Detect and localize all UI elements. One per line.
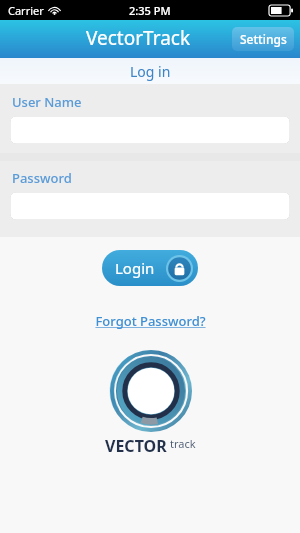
staticText: Log in [130,62,171,81]
staticText: Login [115,258,155,278]
staticText: track [170,436,196,451]
button[interactable]: Settings [232,27,294,51]
staticText: Settings [240,31,287,47]
staticText: VectorTrack [86,25,191,51]
staticText: Password [12,169,72,187]
button[interactable] [10,116,290,144]
staticText: 2:35 PM [129,3,171,18]
staticText: Carrier [8,3,44,18]
staticText: User Name [12,93,82,111]
button[interactable]: Forgot Password? [89,310,212,332]
button[interactable] [10,192,290,220]
button[interactable]: Login [102,250,198,286]
staticText: VECTOR [105,435,167,457]
